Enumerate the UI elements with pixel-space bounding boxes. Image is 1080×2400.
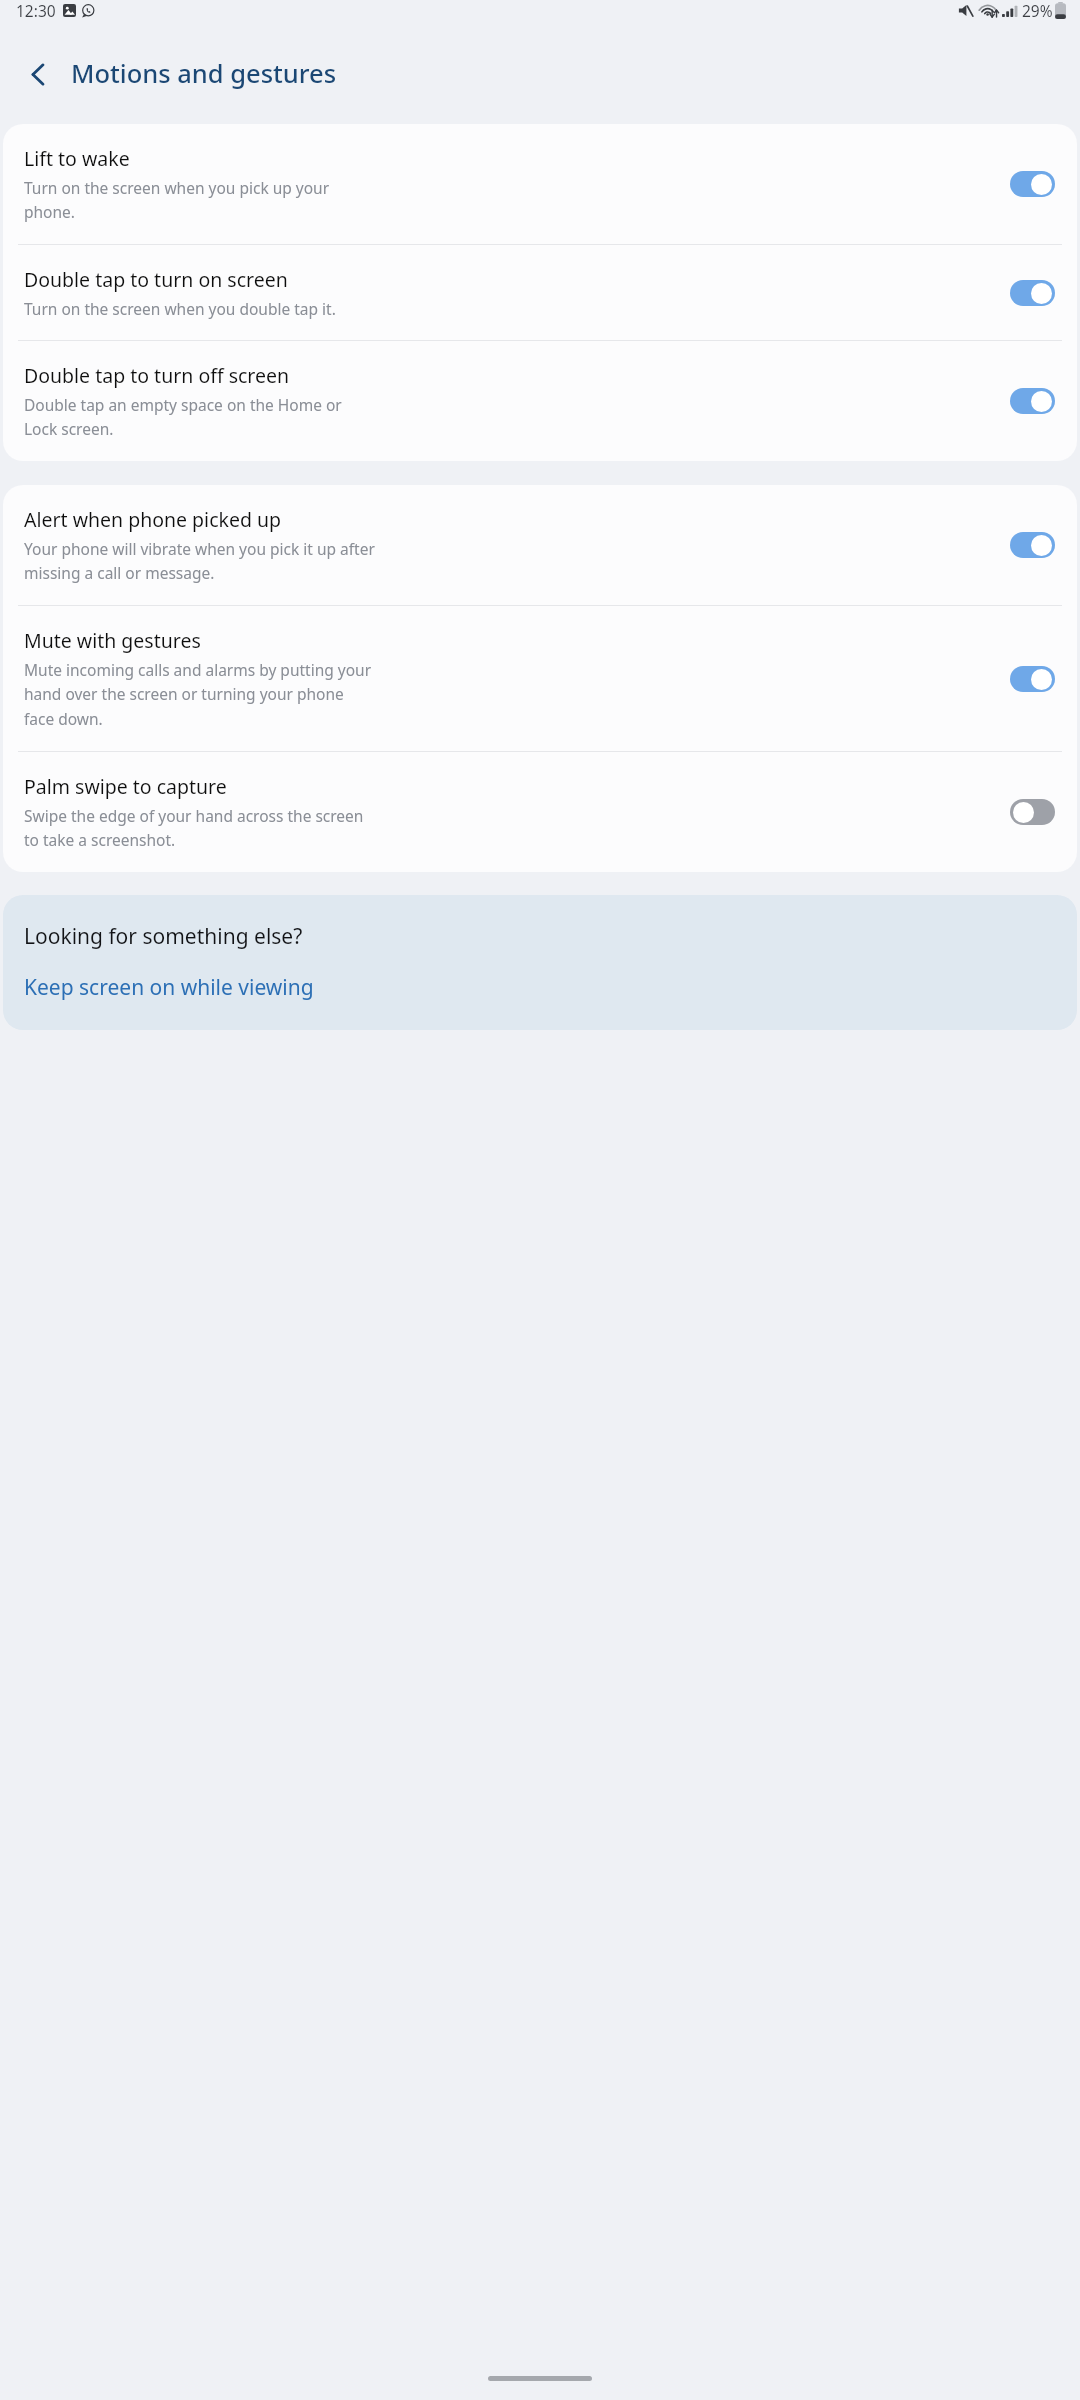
button[interactable]: Palm swipe to capture [3, 752, 1077, 872]
button[interactable]: On [1010, 280, 1055, 306]
staticText: Turn on the screen when you double tap i… [24, 298, 336, 319]
staticText: Motions and gestures [71, 56, 337, 91]
staticText: Double tap an empty space on the Home or… [24, 394, 342, 440]
button[interactable]: Mute with gestures [3, 606, 1077, 751]
staticText: 29% [1022, 0, 1053, 21]
staticText: Your phone will vibrate when you pick it… [24, 538, 375, 584]
staticText: Mute with gestures [24, 627, 201, 654]
staticText: Mute incoming calls and alarms by puttin… [24, 659, 372, 730]
button[interactable]: Double tap to turn on screen [3, 245, 1077, 340]
button[interactable]: On [1010, 666, 1055, 692]
button[interactable]: On [1010, 171, 1055, 197]
button[interactable]: Back [16, 52, 60, 96]
button[interactable]: Lift to wake [3, 124, 1077, 244]
button[interactable]: Off [1010, 799, 1055, 825]
staticText: Double tap to turn off screen [24, 362, 290, 389]
staticText: Lift to wake [24, 145, 130, 172]
staticText: Swipe the edge of your hand across the s… [24, 805, 364, 851]
button[interactable]: Double tap to turn off screen [3, 341, 1077, 461]
staticText: Looking for something else? [24, 922, 303, 951]
staticText: Keep screen on while viewing [24, 973, 314, 1002]
staticText: 12:30 [16, 0, 56, 21]
button[interactable]: On [1010, 388, 1055, 414]
staticText: Palm swipe to capture [24, 773, 227, 800]
button[interactable]: Alert when phone picked up [3, 485, 1077, 605]
staticText: Double tap to turn on screen [24, 266, 288, 293]
button[interactable]: On [1010, 532, 1055, 558]
staticText: Turn on the screen when you pick up your… [24, 177, 330, 223]
button[interactable]: Keep screen on while viewing [24, 973, 314, 1002]
staticText: Alert when phone picked up [24, 506, 282, 533]
